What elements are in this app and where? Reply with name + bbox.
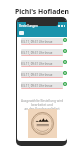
staticText: Ausgewählte Bestellung wird bearbeitet u… bbox=[20, 99, 64, 111]
button[interactable]: Neue Bestellung bbox=[63, 71, 67, 75]
staticText: Bestellungen bbox=[19, 24, 38, 28]
button[interactable]: Pichlbauer Logo bbox=[28, 109, 57, 138]
staticText: 8.5.11, 09:31 Uhr (neue Bestellung) bbox=[21, 84, 63, 88]
button[interactable]: 8.5.11, 09:31 Uhr (neue Bestellung) bbox=[21, 38, 63, 45]
staticText: 8.5.11, 09:31 Uhr (neue Bestellung) bbox=[21, 62, 63, 66]
button[interactable]: Neue Bestellung bbox=[63, 82, 67, 86]
staticText: Pichi's Hofladen bbox=[15, 7, 69, 16]
button[interactable]: 8.5.11, 09:31 Uhr (neue Bestellung) bbox=[21, 60, 63, 67]
button[interactable]: 8.5.11, 09:31 Uhr (neue Bestellung) bbox=[21, 82, 63, 89]
staticText: 8.5.11, 09:31 Uhr (neue Bestellung) bbox=[21, 51, 63, 55]
staticText: 8.5.11, 09:31 Uhr (neue Bestellung) bbox=[21, 73, 63, 77]
button[interactable]: 8.5.11, 09:31 Uhr (neue Bestellung) bbox=[21, 71, 63, 78]
staticText: 8.5.11, 09:31 Uhr (neue Bestellung) bbox=[21, 40, 63, 44]
button[interactable]: Neue Bestellung bbox=[63, 60, 67, 64]
button[interactable]: Neue Bestellung bbox=[63, 38, 67, 42]
button[interactable]: 8.5.11, 09:31 Uhr (neue Bestellung) bbox=[21, 49, 63, 56]
button[interactable]: Neue Bestellung bbox=[63, 49, 67, 53]
button[interactable]: Filter bbox=[19, 31, 24, 35]
